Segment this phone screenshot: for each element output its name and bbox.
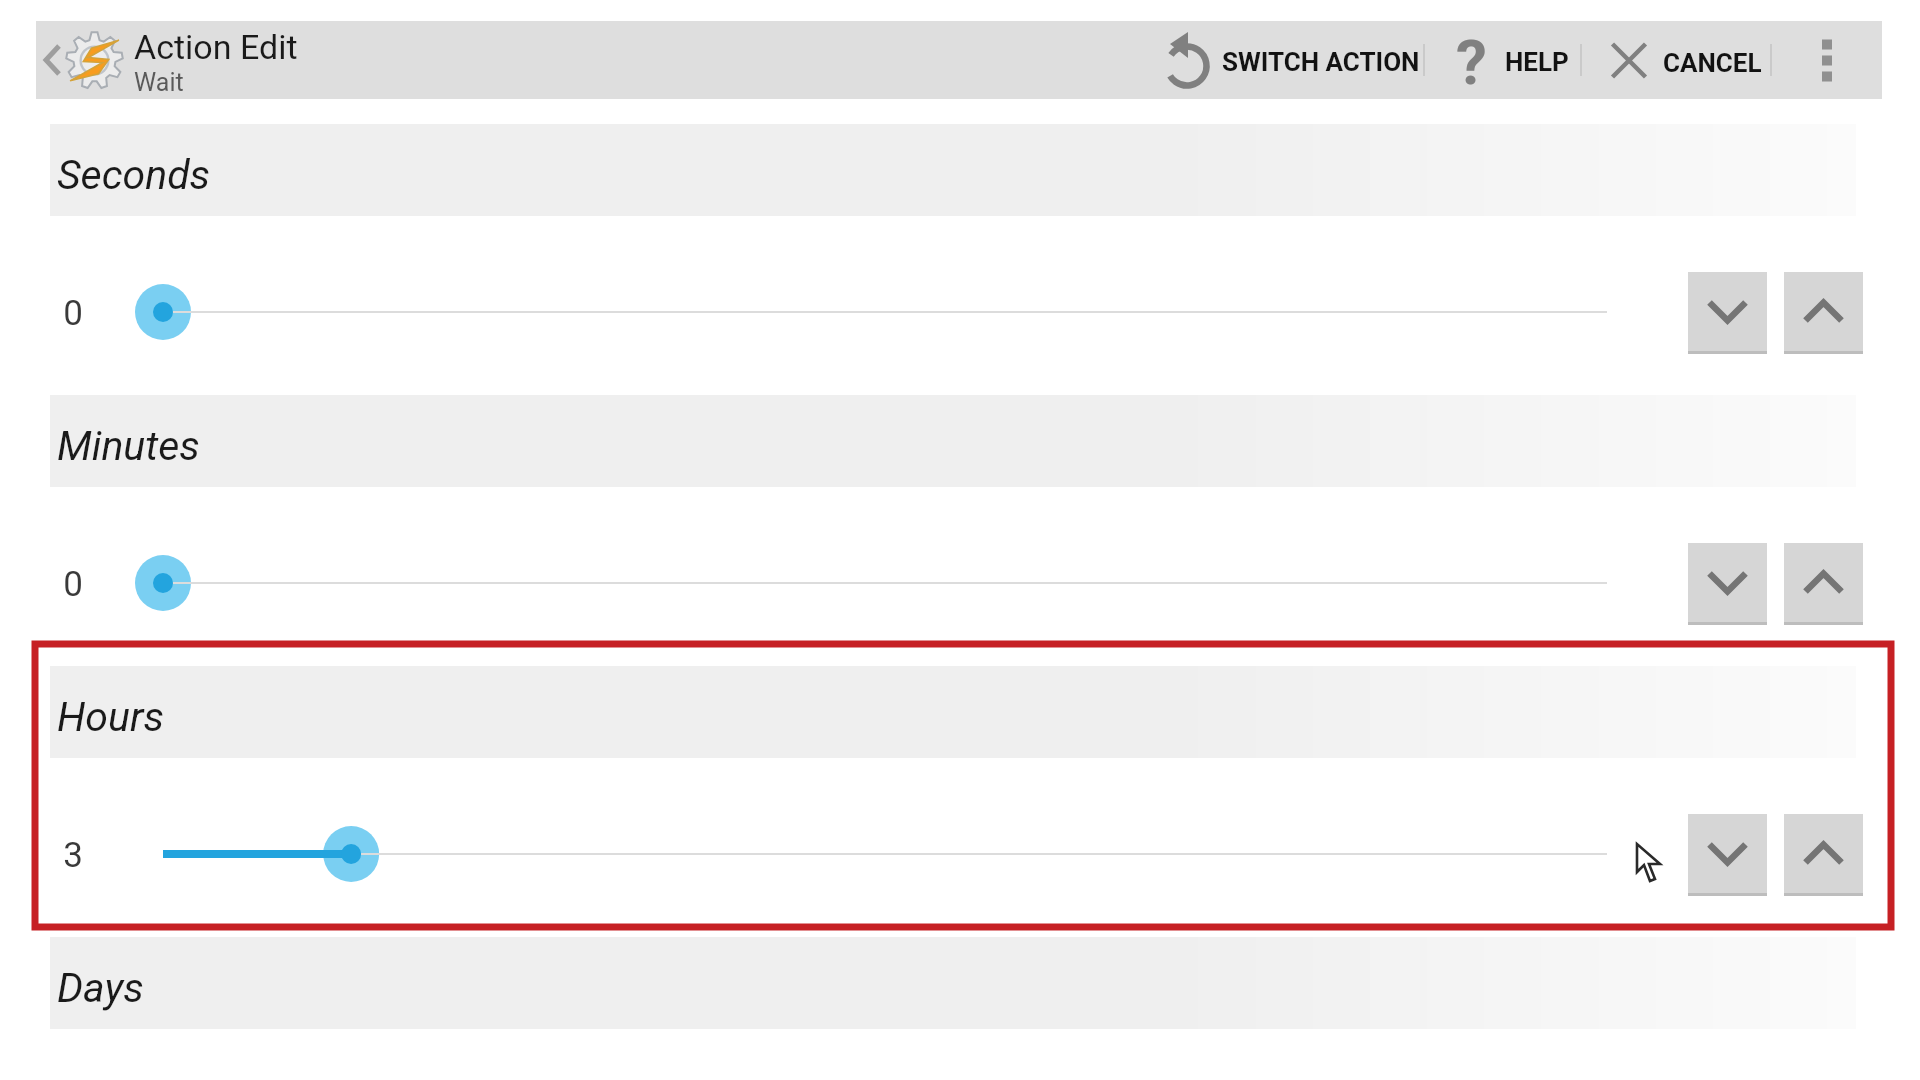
button[interactable]: Decrease Hours bbox=[1688, 814, 1767, 896]
staticText: 0 bbox=[55, 564, 91, 605]
button[interactable]: SWITCH ACTION bbox=[1155, 21, 1421, 99]
button[interactable]: Back bbox=[36, 21, 66, 99]
staticText: Seconds bbox=[57, 151, 211, 199]
staticText: CANCEL bbox=[1663, 48, 1762, 78]
staticText: Wait bbox=[134, 68, 184, 97]
staticText: Minutes bbox=[57, 422, 200, 470]
button[interactable]: CANCEL bbox=[1595, 21, 1770, 99]
button[interactable]: Increase Seconds bbox=[1784, 272, 1863, 354]
button[interactable]: Seconds slider bbox=[120, 272, 1647, 352]
button[interactable]: Hours slider bbox=[120, 814, 1647, 894]
staticText: HELP bbox=[1505, 47, 1569, 77]
button[interactable]: Decrease Minutes bbox=[1688, 543, 1767, 625]
button[interactable]: Minutes slider bbox=[120, 543, 1647, 623]
button[interactable]: ? bbox=[1440, 21, 1605, 99]
button[interactable]: Decrease Seconds bbox=[1688, 272, 1767, 354]
button[interactable]: More options bbox=[1797, 21, 1857, 99]
staticText: SWITCH ACTION bbox=[1222, 47, 1420, 77]
button[interactable]: Tasker bbox=[65, 31, 124, 90]
button[interactable]: Increase Hours bbox=[1784, 814, 1863, 896]
button[interactable]: Increase Minutes bbox=[1784, 543, 1863, 625]
staticText: ? bbox=[1456, 26, 1487, 99]
staticText: Action Edit bbox=[134, 27, 298, 67]
staticText: Hours bbox=[57, 693, 164, 741]
staticText: Days bbox=[57, 964, 144, 1012]
staticText: 3 bbox=[55, 835, 91, 876]
staticText: 0 bbox=[55, 293, 91, 334]
